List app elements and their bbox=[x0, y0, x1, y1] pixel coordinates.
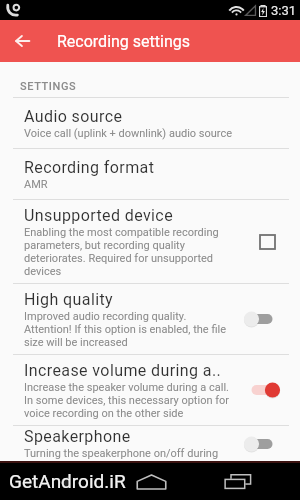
button[interactable]: Recent apps bbox=[219, 463, 257, 500]
staticText: High quality bbox=[24, 290, 114, 309]
button[interactable]: Recording format bbox=[0, 149, 300, 199]
staticText: Increase the speaker volume during a cal… bbox=[24, 381, 234, 420]
button[interactable]: Increase volume during a.. bbox=[0, 355, 300, 425]
button[interactable]: Home bbox=[131, 463, 171, 500]
staticText: 3:31 bbox=[271, 3, 297, 18]
staticText: Improved audio recording quality. Attent… bbox=[24, 310, 234, 349]
button[interactable]: High quality bbox=[0, 284, 300, 354]
button[interactable]: Back bbox=[48, 467, 78, 497]
staticText: SETTINGS bbox=[20, 80, 77, 93]
staticText: Recording settings bbox=[57, 32, 190, 51]
button[interactable]: Unsupported device bbox=[0, 200, 300, 283]
button[interactable]: Back bbox=[8, 27, 36, 55]
staticText: Enabling the most compatible recording p… bbox=[24, 226, 234, 278]
staticText: AMR bbox=[24, 178, 48, 191]
staticText: Voice call (uplink + downlink) audio sou… bbox=[24, 127, 233, 140]
button[interactable]: Audio source bbox=[0, 98, 300, 148]
staticText: Audio source bbox=[24, 107, 123, 126]
staticText: Recording format bbox=[24, 158, 155, 177]
staticText: Unsupported device bbox=[24, 206, 174, 225]
staticText: Turning the speakerphone on/off during bbox=[24, 447, 219, 460]
staticText: Increase volume during a.. bbox=[24, 361, 222, 380]
staticText: Speakerphone bbox=[24, 427, 131, 446]
staticText: GetAndroid.iR bbox=[9, 470, 126, 492]
button[interactable]: Speakerphone bbox=[0, 426, 300, 461]
